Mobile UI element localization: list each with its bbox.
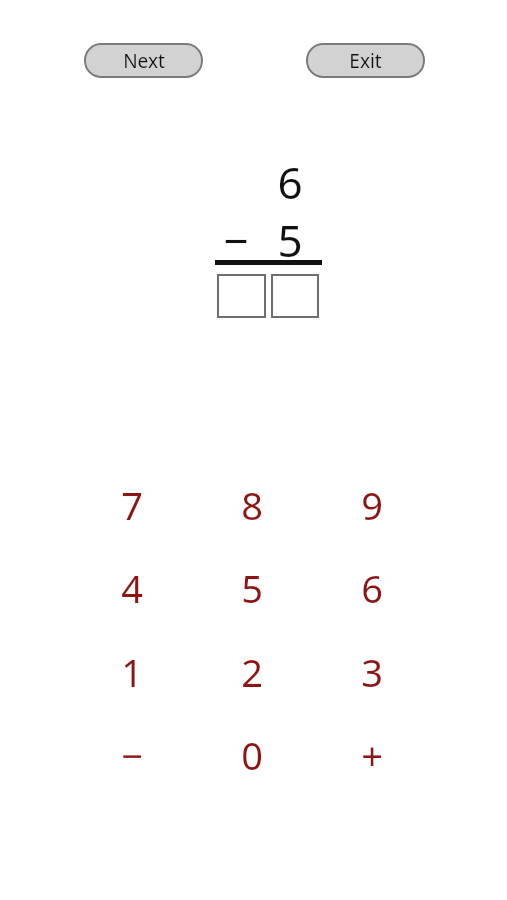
button[interactable]: + bbox=[332, 715, 412, 795]
button[interactable]: Exit bbox=[306, 43, 425, 78]
button[interactable]: 7 bbox=[92, 465, 172, 545]
button[interactable]: 6 bbox=[332, 548, 412, 628]
staticText: 0 bbox=[241, 729, 263, 781]
staticText: 5 bbox=[241, 562, 263, 614]
staticText: 3 bbox=[361, 646, 383, 698]
button[interactable]: Next bbox=[84, 43, 203, 78]
staticText: 8 bbox=[241, 479, 263, 531]
button[interactable]: 5 bbox=[212, 548, 292, 628]
staticText: Exit bbox=[349, 48, 382, 74]
staticText: − bbox=[223, 210, 249, 266]
staticText: 6 bbox=[277, 152, 303, 208]
staticText: − bbox=[121, 729, 143, 781]
staticText: 1 bbox=[121, 646, 143, 698]
staticText: 9 bbox=[361, 479, 383, 531]
staticText: 4 bbox=[121, 562, 143, 614]
staticText: 2 bbox=[241, 646, 263, 698]
button[interactable]: 2 bbox=[212, 632, 292, 712]
button[interactable]: 4 bbox=[92, 548, 172, 628]
staticText: Next bbox=[123, 48, 165, 74]
staticText: + bbox=[361, 729, 383, 781]
button[interactable]: − bbox=[92, 715, 172, 795]
button[interactable]: 8 bbox=[212, 465, 292, 545]
staticText: 6 bbox=[361, 562, 383, 614]
button[interactable]: 1 bbox=[92, 632, 172, 712]
button[interactable]: 0 bbox=[212, 715, 292, 795]
button[interactable]: Answer digit 1 bbox=[217, 274, 266, 318]
staticText: 7 bbox=[121, 479, 143, 531]
button[interactable]: 3 bbox=[332, 632, 412, 712]
staticText: 5 bbox=[277, 210, 303, 266]
button[interactable]: 9 bbox=[332, 465, 412, 545]
button[interactable]: Answer digit 2 bbox=[271, 274, 319, 318]
